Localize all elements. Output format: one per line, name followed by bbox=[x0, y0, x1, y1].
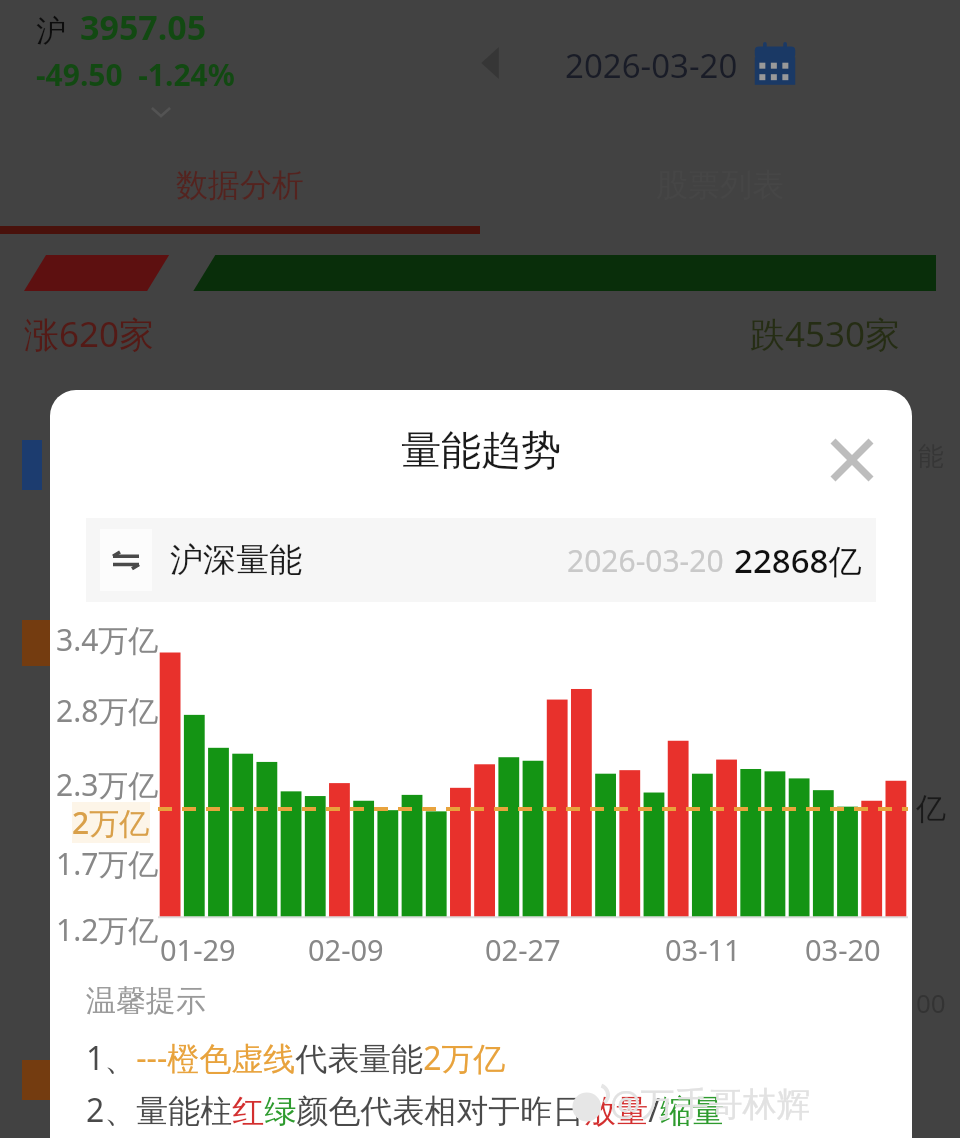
staticText: 量能趋势 bbox=[401, 425, 561, 475]
staticText: 01-29 bbox=[160, 930, 236, 969]
staticText: 02-09 bbox=[308, 930, 384, 969]
staticText: 03-20 bbox=[805, 930, 881, 969]
staticText: 数据分析 bbox=[176, 165, 304, 205]
staticText: @万手哥林辉 bbox=[610, 1080, 811, 1126]
staticText: 2.3万亿 bbox=[56, 764, 159, 805]
button[interactable]: 2026-03-20 bbox=[565, 42, 798, 88]
staticText: 温馨提示 bbox=[86, 982, 206, 1020]
staticText: 3957.05 bbox=[80, 4, 207, 50]
staticText: 00 bbox=[916, 985, 946, 1020]
staticText: 涨620家 bbox=[24, 310, 155, 358]
staticText: 22868亿 bbox=[734, 538, 862, 583]
staticText: 沪深量能 bbox=[170, 539, 302, 581]
button[interactable]: 沪深量能 bbox=[86, 518, 876, 602]
staticText: 2、量能柱红绿颜色代表相对于昨日放量/缩量 bbox=[86, 1088, 725, 1132]
staticText: -49.50 -1.24% bbox=[36, 54, 235, 95]
staticText: 2026-03-20 bbox=[565, 43, 738, 88]
button[interactable]: Previous day bbox=[470, 38, 510, 88]
staticText: 03-11 bbox=[665, 930, 741, 969]
button[interactable]: 数据分析 bbox=[0, 150, 480, 220]
staticText: 2.8万亿 bbox=[56, 690, 159, 731]
staticText: 跌4530家 bbox=[750, 310, 901, 358]
staticText: 1.2万亿 bbox=[56, 909, 159, 950]
staticText: 2万亿 bbox=[72, 802, 150, 843]
staticText: 能 bbox=[918, 440, 944, 473]
staticText: 02-27 bbox=[485, 930, 561, 969]
staticText: 沪 bbox=[36, 12, 66, 50]
staticText: 1.7万亿 bbox=[56, 843, 159, 884]
staticText: 2026-03-20 bbox=[567, 540, 724, 581]
staticText: 3.4万亿 bbox=[56, 619, 159, 660]
button[interactable]: Close bbox=[812, 420, 892, 500]
staticText: 1、---橙色虚线代表量能2万亿 bbox=[86, 1036, 506, 1080]
staticText: 亿 bbox=[916, 790, 946, 828]
